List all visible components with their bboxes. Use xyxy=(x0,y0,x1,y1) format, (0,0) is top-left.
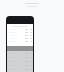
button[interactable] xyxy=(7,24,33,28)
button[interactable] xyxy=(7,40,33,43)
button[interactable] xyxy=(7,63,33,67)
button[interactable] xyxy=(7,59,33,63)
button[interactable] xyxy=(7,31,33,34)
button[interactable] xyxy=(7,67,33,71)
button[interactable] xyxy=(7,51,33,55)
button[interactable] xyxy=(7,55,33,59)
button[interactable] xyxy=(7,34,33,37)
button[interactable] xyxy=(7,28,33,31)
button[interactable] xyxy=(7,37,33,40)
